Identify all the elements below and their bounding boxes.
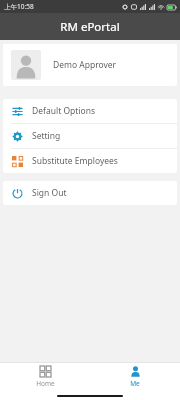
staticText: Sign Out bbox=[32, 187, 67, 199]
button[interactable]: Demo Approver bbox=[3, 44, 177, 86]
staticText: Home bbox=[36, 379, 55, 388]
staticText: Substitute Employees bbox=[32, 155, 118, 167]
button[interactable]: Sign Out bbox=[3, 181, 177, 205]
staticText: Demo Approver bbox=[53, 59, 117, 71]
staticText: Me bbox=[130, 379, 140, 388]
button[interactable]: Me bbox=[90, 363, 180, 391]
button[interactable]: Substitute Employees bbox=[3, 149, 177, 173]
button[interactable]: Default Options bbox=[3, 99, 177, 123]
staticText: 上午10:58 bbox=[4, 2, 34, 11]
button[interactable]: Setting bbox=[3, 124, 177, 148]
staticText: Setting bbox=[32, 130, 61, 142]
staticText: RM ePortal bbox=[60, 19, 120, 35]
staticText: Default Options bbox=[32, 105, 96, 117]
button[interactable]: Home bbox=[0, 363, 90, 391]
